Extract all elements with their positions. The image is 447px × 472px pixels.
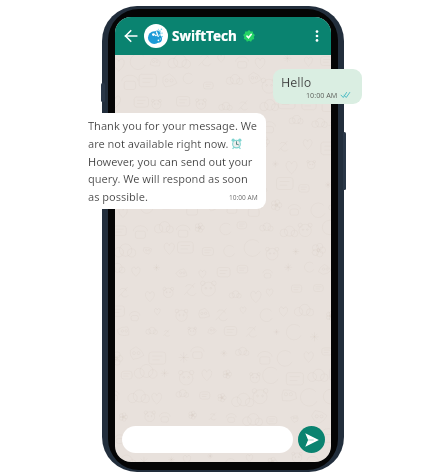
staticText: SwiftTech (172, 27, 237, 45)
staticText: are not available right now. (88, 136, 229, 151)
button[interactable]: Hello (273, 69, 362, 104)
button[interactable]: Profile photo (144, 24, 168, 48)
button[interactable]: Back (122, 27, 140, 45)
staticText: as possible. (88, 189, 148, 204)
button[interactable]: Message input (122, 426, 293, 453)
button[interactable]: More options (306, 25, 328, 47)
staticText: Thank you for your message. We (88, 118, 258, 133)
button[interactable]: Thank you for your message. We (80, 113, 266, 209)
staticText: 10:00 AM (229, 193, 258, 202)
staticText: However, you can send out your (88, 154, 253, 169)
staticText: 10:00 AM (306, 90, 338, 100)
staticText: query. We will respond as soon (88, 171, 248, 186)
button[interactable]: Send (298, 426, 325, 453)
staticText: Hello (281, 74, 312, 91)
